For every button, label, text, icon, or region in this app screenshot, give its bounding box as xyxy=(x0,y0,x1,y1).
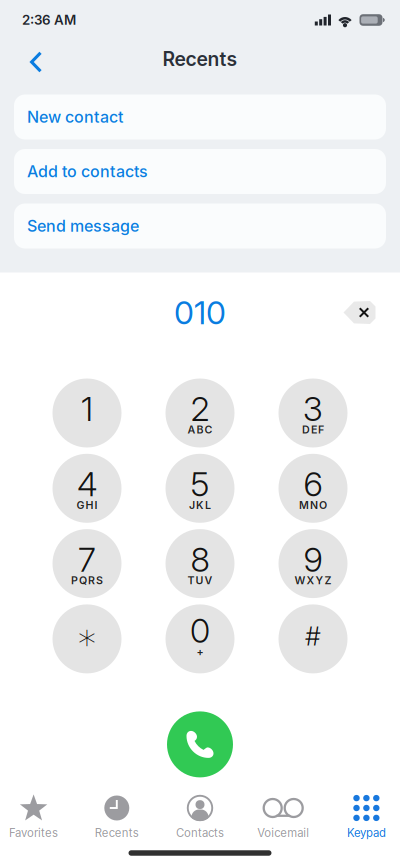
staticText: 2:36 AM xyxy=(22,12,76,28)
button[interactable]: 9 xyxy=(278,529,347,598)
button[interactable]: # xyxy=(278,604,347,673)
button[interactable]: ∗ xyxy=(52,604,121,673)
button[interactable]: 4 xyxy=(52,454,121,523)
staticText: 3 xyxy=(303,389,323,429)
button[interactable]: 1 xyxy=(52,378,121,447)
staticText: G H I xyxy=(76,498,97,511)
button[interactable]: Back xyxy=(0,40,64,84)
staticText: T U V xyxy=(187,574,212,587)
staticText: Favorites xyxy=(9,826,58,840)
staticText: W X Y Z xyxy=(294,574,331,587)
staticText: 9 xyxy=(303,539,322,580)
staticText: 8 xyxy=(190,539,209,580)
staticText: 1 xyxy=(81,389,93,429)
button[interactable]: Add to contacts xyxy=(14,149,386,194)
staticText: Recents xyxy=(95,826,139,840)
button[interactable]: Delete xyxy=(343,301,375,324)
staticText: D E F xyxy=(302,423,324,436)
staticText: Voicemail xyxy=(257,826,309,840)
staticText: 6 xyxy=(303,464,322,504)
button[interactable]: New contact xyxy=(14,94,386,139)
button[interactable]: 7 xyxy=(52,529,121,598)
staticText: Add to contacts xyxy=(27,162,148,181)
staticText: J K L xyxy=(189,498,211,511)
button[interactable]: 8 xyxy=(165,529,234,598)
button[interactable]: Call xyxy=(167,711,233,777)
staticText: + xyxy=(196,646,203,659)
button[interactable]: Voicemail xyxy=(250,791,317,844)
staticText: 0 xyxy=(190,610,210,651)
button[interactable]: 0 xyxy=(165,604,234,673)
staticText: 4 xyxy=(77,464,97,504)
button[interactable]: Recents xyxy=(83,791,150,844)
button[interactable]: Contacts xyxy=(166,791,233,844)
staticText: Send message xyxy=(27,216,139,236)
button[interactable]: Keypad xyxy=(333,791,400,844)
staticText: Keypad xyxy=(347,826,386,840)
button[interactable]: 6 xyxy=(278,454,347,523)
button[interactable]: 5 xyxy=(165,454,234,523)
staticText: Contacts xyxy=(176,826,224,840)
button[interactable]: 3 xyxy=(278,378,347,447)
staticText: A B C xyxy=(187,423,212,436)
button[interactable]: Send message xyxy=(14,203,386,248)
staticText: 5 xyxy=(190,464,209,504)
button[interactable]: 2 xyxy=(165,378,234,447)
staticText: P Q R S xyxy=(71,574,103,587)
button[interactable]: Favorites xyxy=(0,791,67,844)
staticText: Recents xyxy=(162,47,237,71)
staticText: 7 xyxy=(78,539,96,580)
staticText: New contact xyxy=(27,107,123,127)
staticText: 010 xyxy=(174,293,226,332)
staticText: M N O xyxy=(299,498,327,511)
staticText: # xyxy=(305,621,321,652)
staticText: 2 xyxy=(190,389,209,429)
staticText: ∗ xyxy=(75,616,98,658)
